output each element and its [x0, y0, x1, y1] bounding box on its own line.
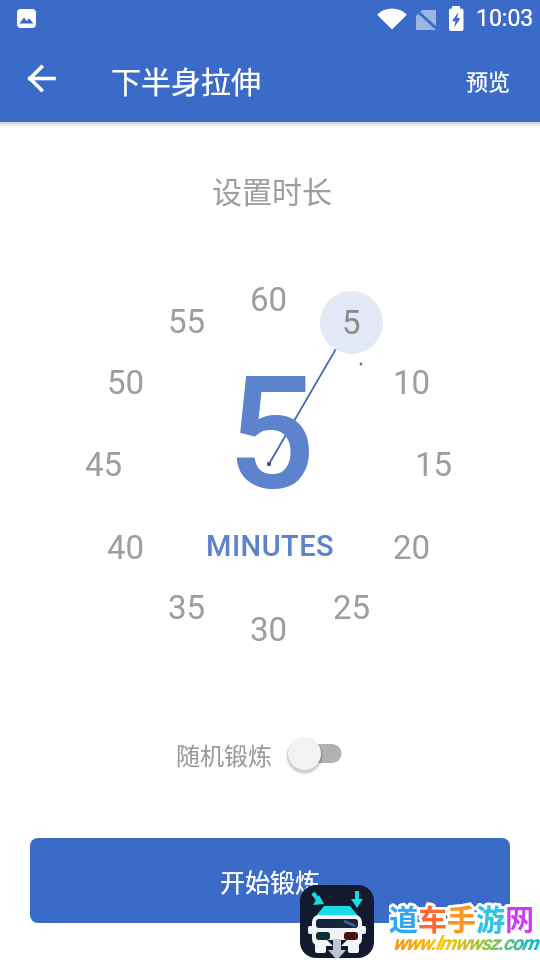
staticText: www.lmwwsz.com — [393, 931, 538, 954]
staticText: MINUTES — [206, 529, 335, 563]
staticText: www.lmwwsz.com — [393, 931, 538, 954]
staticText: 10:03 — [476, 5, 534, 32]
staticText: 50 — [107, 363, 145, 402]
staticText: 25 — [333, 588, 371, 627]
staticText: 5 — [227, 343, 316, 525]
staticText: 40 — [107, 528, 145, 567]
staticText: 30 — [250, 610, 288, 649]
staticText: 道车手游网 — [389, 897, 535, 935]
staticText: 开始锻炼 — [220, 863, 321, 899]
staticText: 20 — [393, 528, 431, 567]
staticText: 10 — [393, 363, 431, 402]
staticText: 15 — [415, 445, 453, 484]
staticText: 下半身拉伸 — [111, 58, 261, 101]
button[interactable]: 开始锻炼 — [30, 838, 510, 923]
staticText: 随机锻炼 — [176, 737, 272, 772]
staticText: 60 — [250, 280, 288, 319]
staticText: 55 — [168, 302, 206, 341]
staticText: 5 — [342, 303, 361, 342]
staticText: 预览 — [466, 64, 511, 96]
button[interactable] — [18, 67, 66, 115]
staticText: 道车手游网 — [389, 897, 535, 935]
staticText: 45 — [85, 445, 123, 484]
staticText: 设置时长 — [212, 168, 332, 211]
staticText: 35 — [168, 588, 206, 627]
button[interactable]: 预览 — [452, 57, 524, 102]
button[interactable] — [284, 733, 348, 775]
